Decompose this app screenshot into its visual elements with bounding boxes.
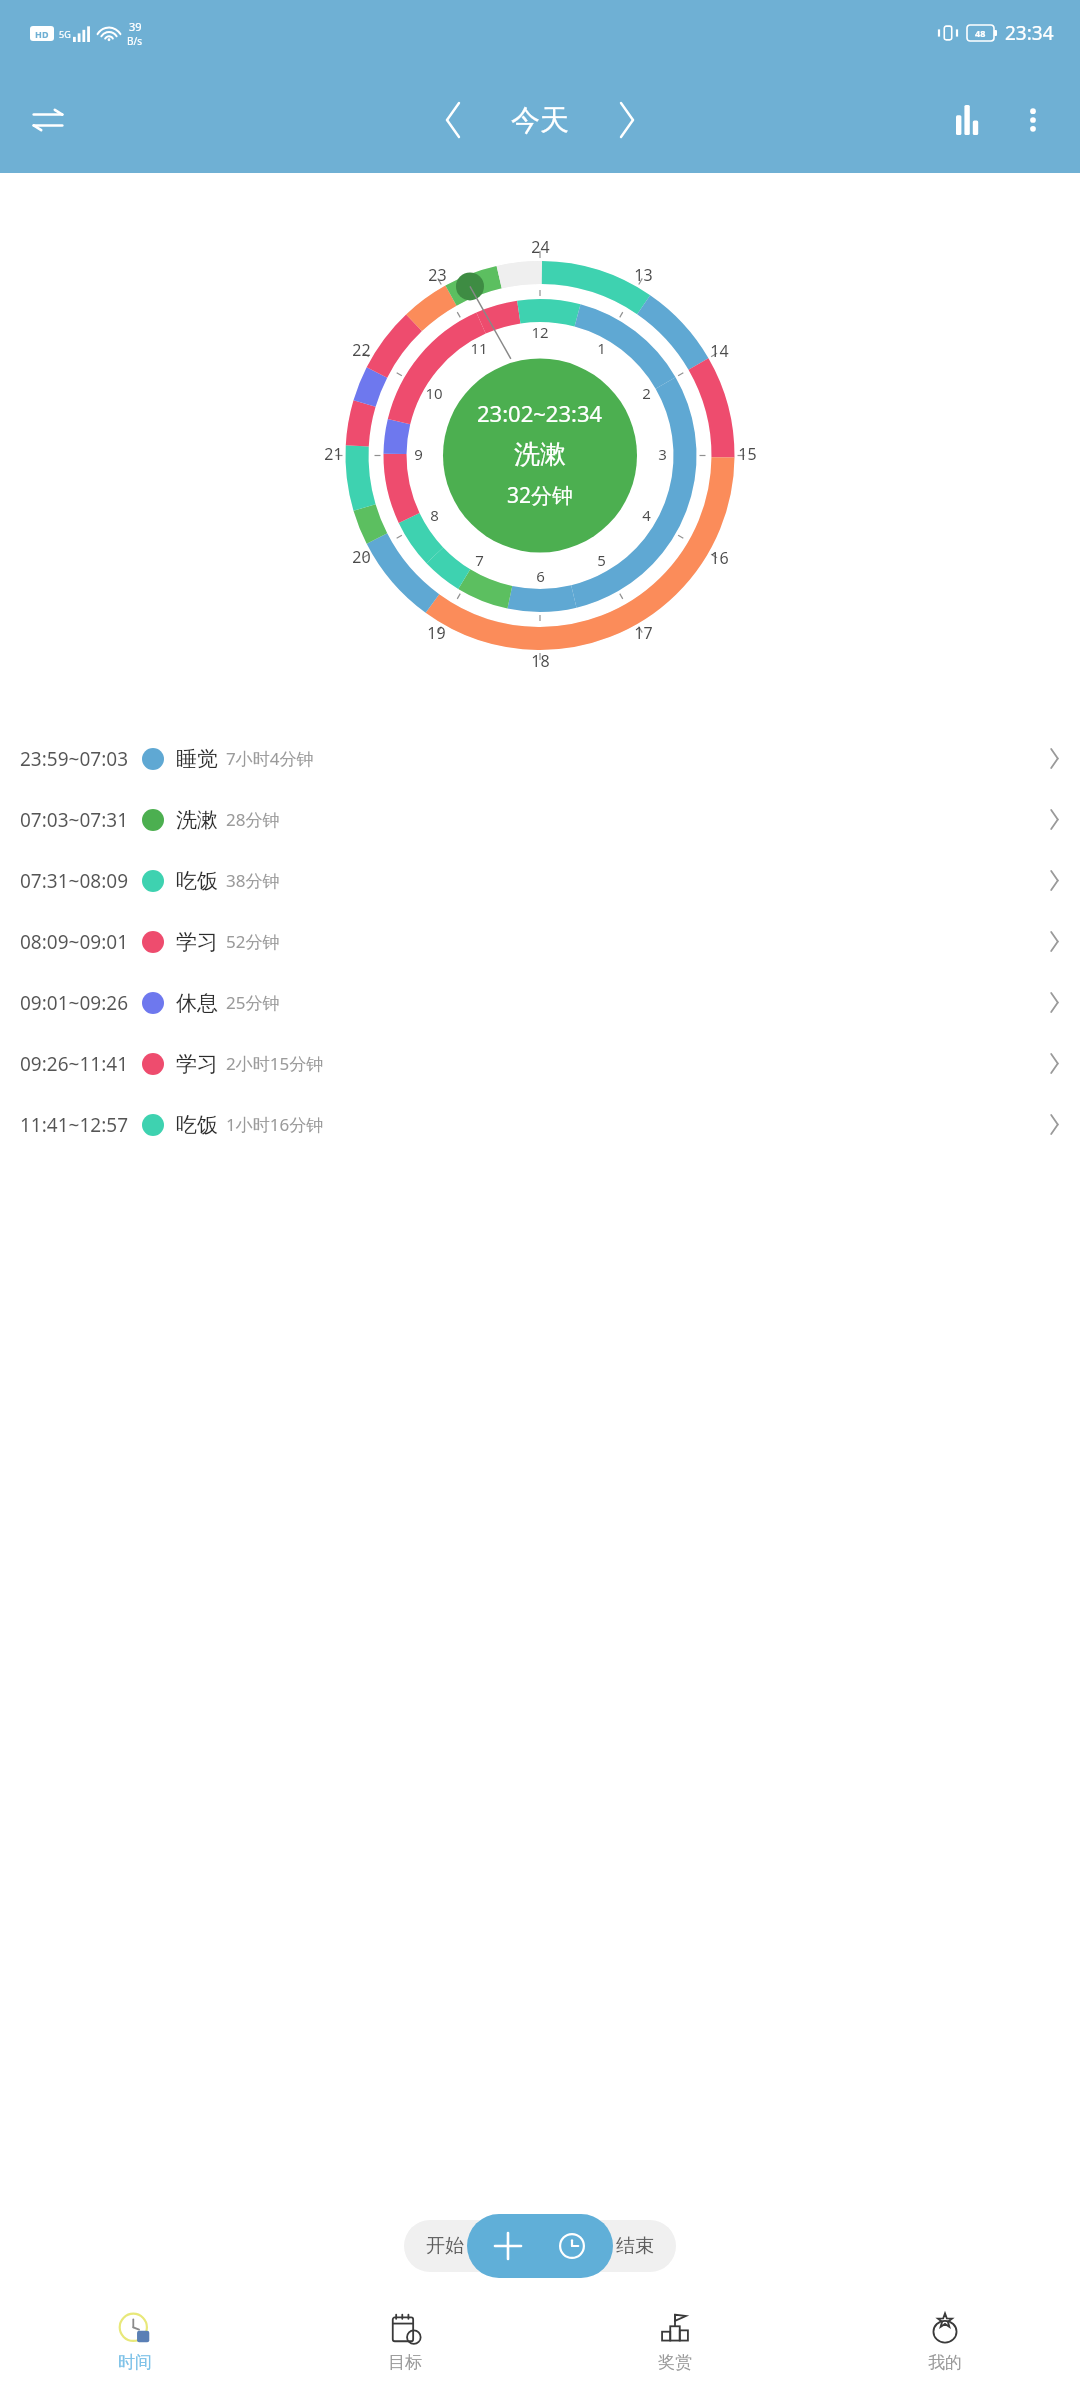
staticText: 07:31~08:09: [20, 868, 128, 894]
staticText: 22: [352, 339, 371, 361]
button[interactable]: 时间: [0, 2296, 270, 2388]
staticText: 7小时4分钟: [226, 747, 314, 770]
staticText: 结束: [616, 2234, 654, 2258]
staticText: 奖赏: [658, 2352, 692, 2373]
button[interactable]: 今天: [501, 96, 579, 145]
button[interactable]: Statistics: [940, 89, 1002, 151]
staticText: 休息: [176, 990, 218, 1016]
button[interactable]: 我的: [810, 2296, 1080, 2388]
staticText: 39: [129, 19, 142, 34]
staticText: 24: [531, 236, 550, 258]
staticText: 吃饭: [176, 868, 218, 894]
button[interactable]: 11:41~12:57: [0, 1094, 1080, 1155]
staticText: 4: [642, 505, 651, 525]
staticText: 18: [531, 650, 550, 672]
button[interactable]: More options: [1002, 89, 1064, 151]
staticText: 23:59~07:03: [20, 746, 128, 772]
staticText: 2小时15分钟: [226, 1052, 324, 1075]
staticText: 洗漱: [514, 438, 566, 471]
staticText: 学习: [176, 929, 218, 955]
staticText: 6: [536, 566, 545, 586]
staticText: 目标: [388, 2352, 422, 2373]
staticText: 08:09~09:01: [20, 929, 128, 955]
staticText: 28分钟: [226, 808, 280, 831]
staticText: 21: [324, 443, 343, 465]
staticText: 8: [430, 505, 439, 525]
staticText: 20: [352, 546, 371, 568]
staticText: 09:26~11:41: [20, 1051, 128, 1077]
staticText: 11:41~12:57: [20, 1112, 128, 1138]
staticText: 洗漱: [176, 807, 218, 833]
button[interactable]: 奖赏: [540, 2296, 810, 2388]
staticText: 16: [710, 547, 729, 569]
staticText: 学习: [176, 1051, 218, 1077]
staticText: 23: [428, 264, 447, 286]
staticText: 5: [597, 550, 606, 570]
button[interactable]: 07:03~07:31: [0, 789, 1080, 850]
staticText: 15: [738, 443, 757, 465]
staticText: 14: [710, 340, 729, 362]
staticText: 我的: [928, 2352, 962, 2373]
staticText: 时间: [118, 2352, 152, 2373]
staticText: 2: [642, 383, 651, 403]
staticText: 今天: [511, 102, 569, 139]
staticText: 17: [634, 622, 653, 644]
staticText: 25分钟: [226, 991, 280, 1014]
button[interactable]: Previous day: [427, 94, 479, 146]
staticText: 09:01~09:26: [20, 990, 128, 1016]
button[interactable]: 结束: [616, 2234, 654, 2258]
staticText: 10: [425, 383, 443, 403]
button[interactable]: Add record: [484, 2222, 532, 2270]
button[interactable]: 09:01~09:26: [0, 972, 1080, 1033]
staticText: 38分钟: [226, 869, 280, 892]
button[interactable]: 09:26~11:41: [0, 1033, 1080, 1094]
staticText: 07:03~07:31: [20, 807, 128, 833]
staticText: 23:34: [1005, 20, 1054, 46]
staticText: 52分钟: [226, 930, 280, 953]
button[interactable]: 目标: [270, 2296, 540, 2388]
button[interactable]: Timer: [548, 2222, 596, 2270]
staticText: 23:02~23:34: [477, 398, 603, 428]
staticText: 7: [475, 550, 484, 570]
staticText: HD: [35, 28, 49, 40]
staticText: 吃饭: [176, 1112, 218, 1138]
staticText: 5G: [59, 28, 71, 40]
button[interactable]: Switch view: [16, 88, 80, 152]
staticText: 13: [634, 264, 653, 286]
staticText: 32分钟: [507, 481, 574, 510]
button[interactable]: Next day: [601, 94, 653, 146]
button[interactable]: 开始: [426, 2234, 464, 2258]
staticText: 48: [975, 27, 986, 39]
staticText: 19: [427, 622, 446, 644]
staticText: 睡觉: [176, 746, 218, 772]
staticText: 1小时16分钟: [226, 1113, 324, 1136]
staticText: 3: [658, 444, 667, 464]
staticText: 9: [414, 444, 423, 464]
staticText: 12: [531, 322, 549, 342]
staticText: 11: [470, 338, 488, 358]
button[interactable]: 23:59~07:03: [0, 728, 1080, 789]
staticText: B/s: [127, 34, 143, 48]
staticText: 1: [597, 338, 606, 358]
button[interactable]: 08:09~09:01: [0, 911, 1080, 972]
button[interactable]: 07:31~08:09: [0, 850, 1080, 911]
staticText: 开始: [426, 2234, 464, 2258]
